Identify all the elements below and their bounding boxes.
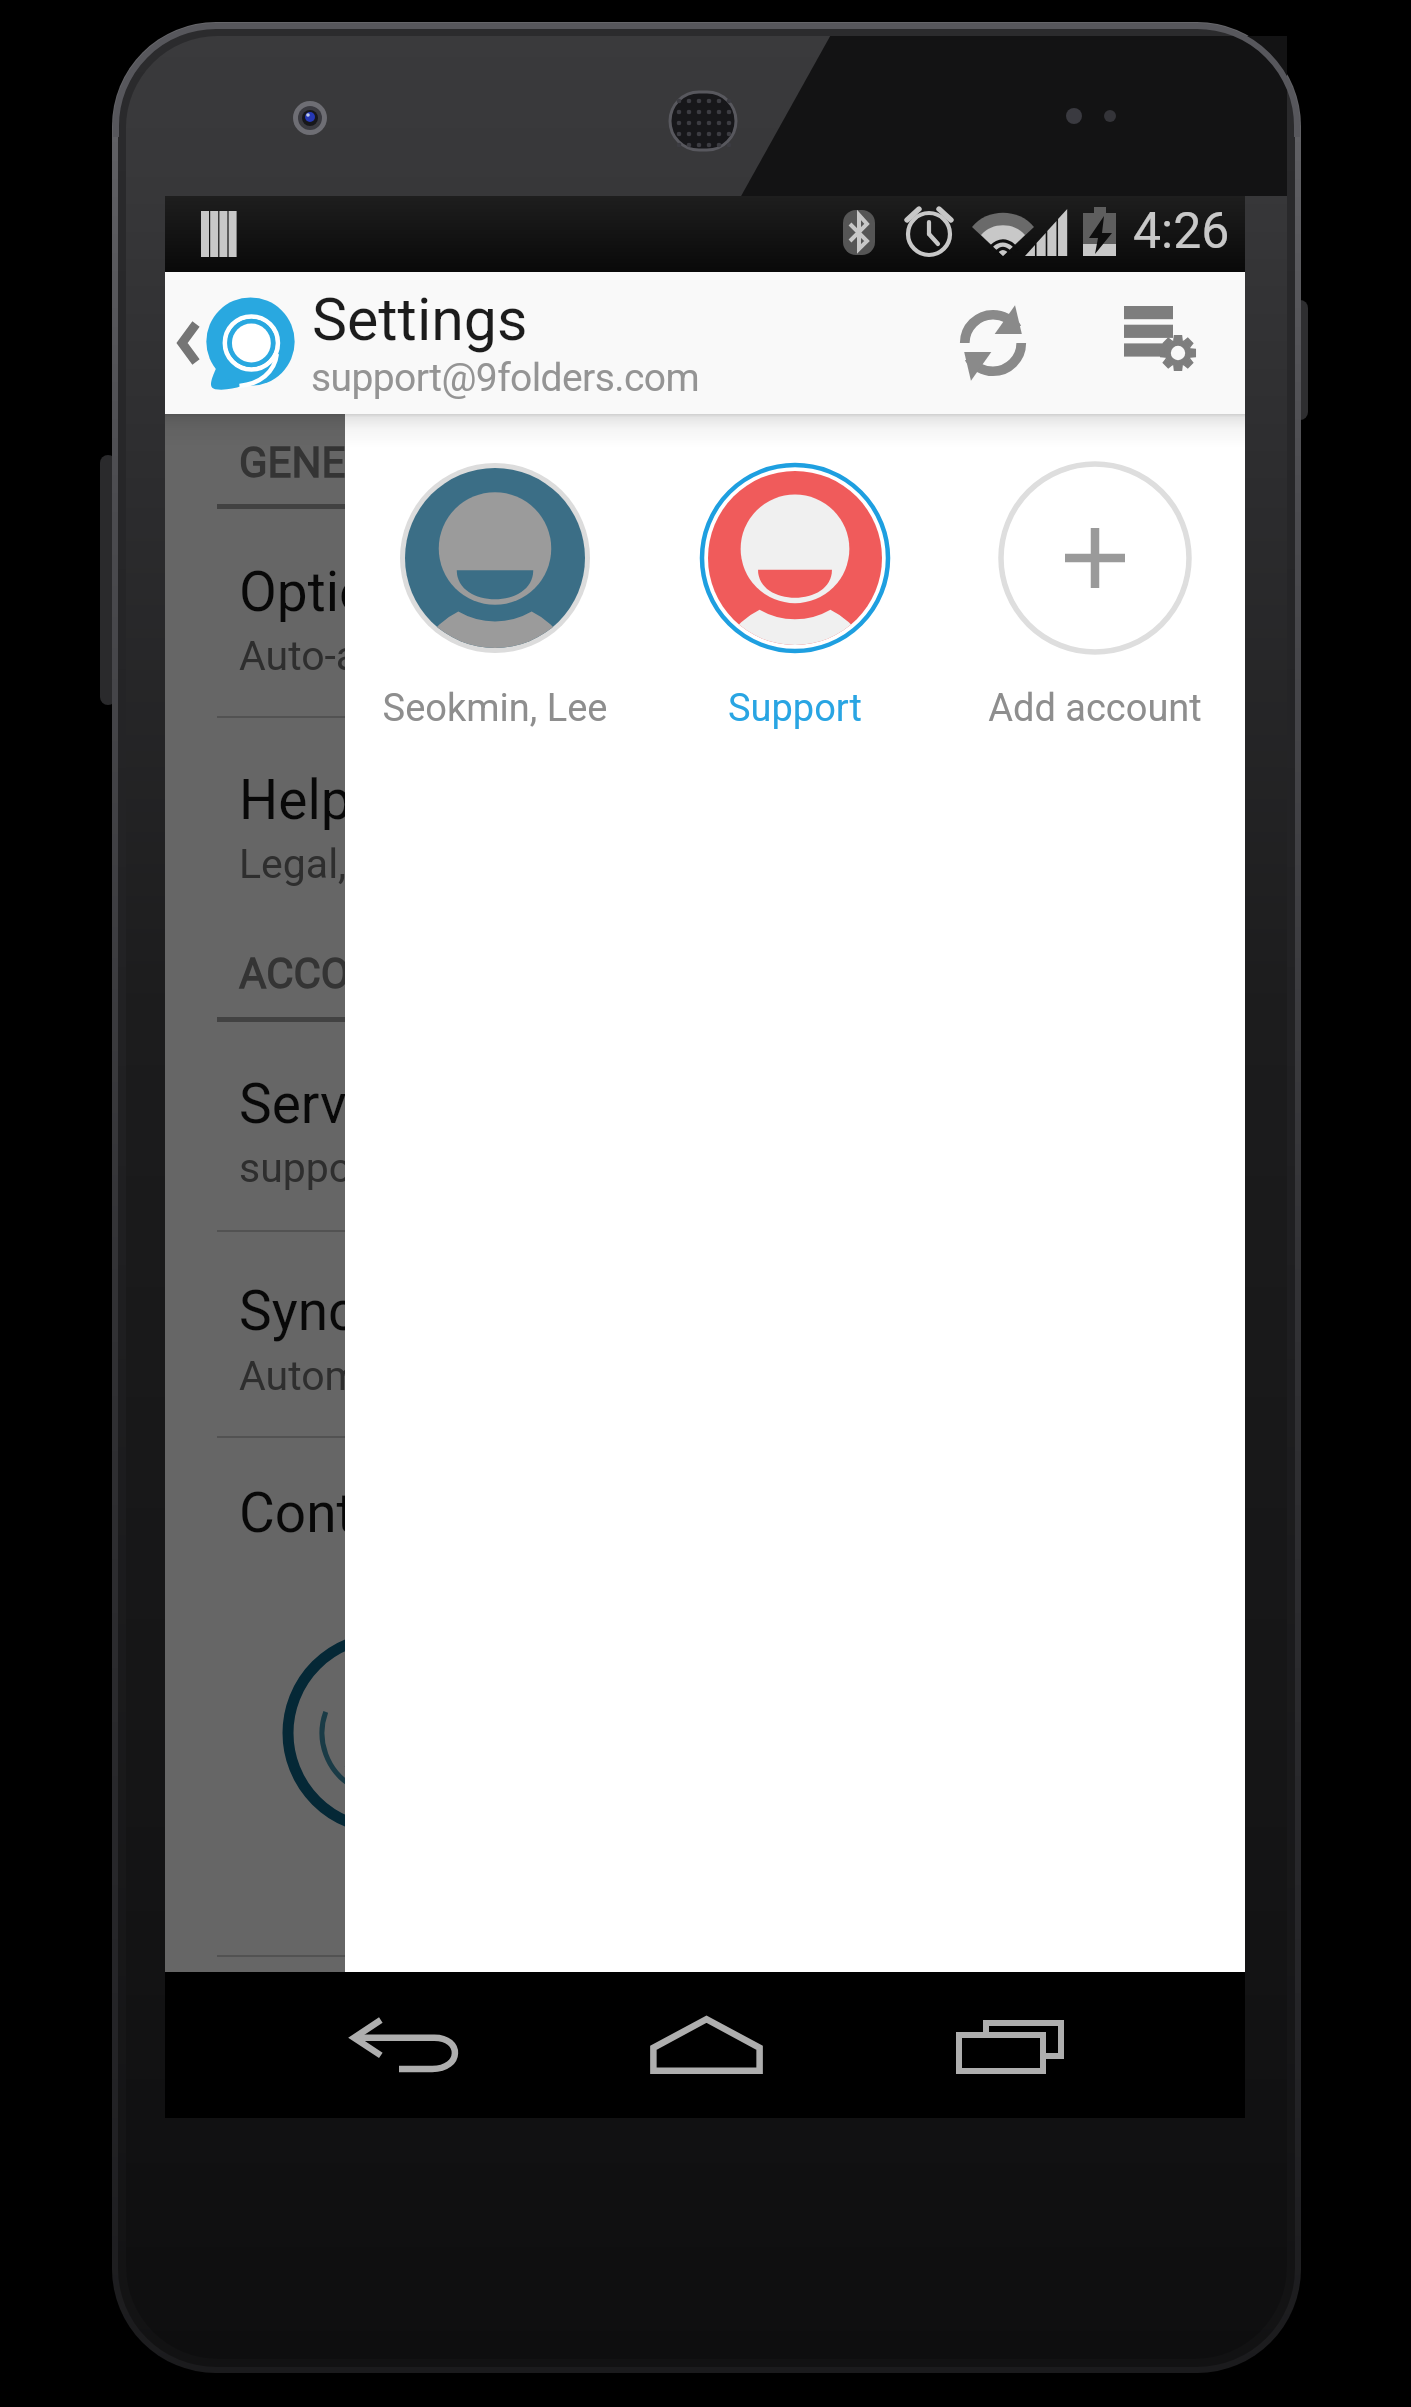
staticText: Support bbox=[645, 686, 945, 731]
button[interactable]: Seokmin, Lee bbox=[345, 464, 645, 734]
staticText: Automatic bbox=[239, 1352, 428, 1400]
button[interactable]: Add account bbox=[945, 464, 1245, 734]
staticText: Add account bbox=[945, 686, 1245, 731]
staticText: support@9folders.com bbox=[311, 355, 699, 401]
staticText: Legal, About, Version bbox=[239, 840, 622, 888]
button[interactable]: Back bbox=[165, 272, 211, 414]
staticText: 4:26 bbox=[1133, 202, 1230, 261]
staticText: ACCOUNTS bbox=[239, 949, 457, 998]
staticText: Sync bbox=[239, 1279, 357, 1343]
button[interactable]: 9Folders logo bbox=[204, 297, 297, 390]
staticText: Seokmin, Lee bbox=[345, 686, 645, 731]
button[interactable]: Back bbox=[291, 1972, 521, 2118]
button[interactable]: Home bbox=[591, 1972, 821, 2118]
staticText: support@9folders.com bbox=[239, 1144, 660, 1192]
staticText: Auto-advance, Notification bbox=[239, 632, 720, 680]
staticText: Server bbox=[239, 1072, 395, 1136]
staticText: Help bbox=[239, 768, 352, 832]
button[interactable]: Refresh bbox=[930, 272, 1056, 414]
button[interactable]: Support bbox=[645, 464, 945, 734]
staticText: GENERAL bbox=[239, 438, 422, 487]
staticText: Settings bbox=[312, 285, 528, 354]
button[interactable]: Recent apps bbox=[895, 1972, 1125, 2118]
staticText: Options bbox=[239, 560, 430, 624]
staticText: Contacts bbox=[239, 1481, 460, 1545]
button[interactable]: Account settings bbox=[1095, 272, 1227, 414]
